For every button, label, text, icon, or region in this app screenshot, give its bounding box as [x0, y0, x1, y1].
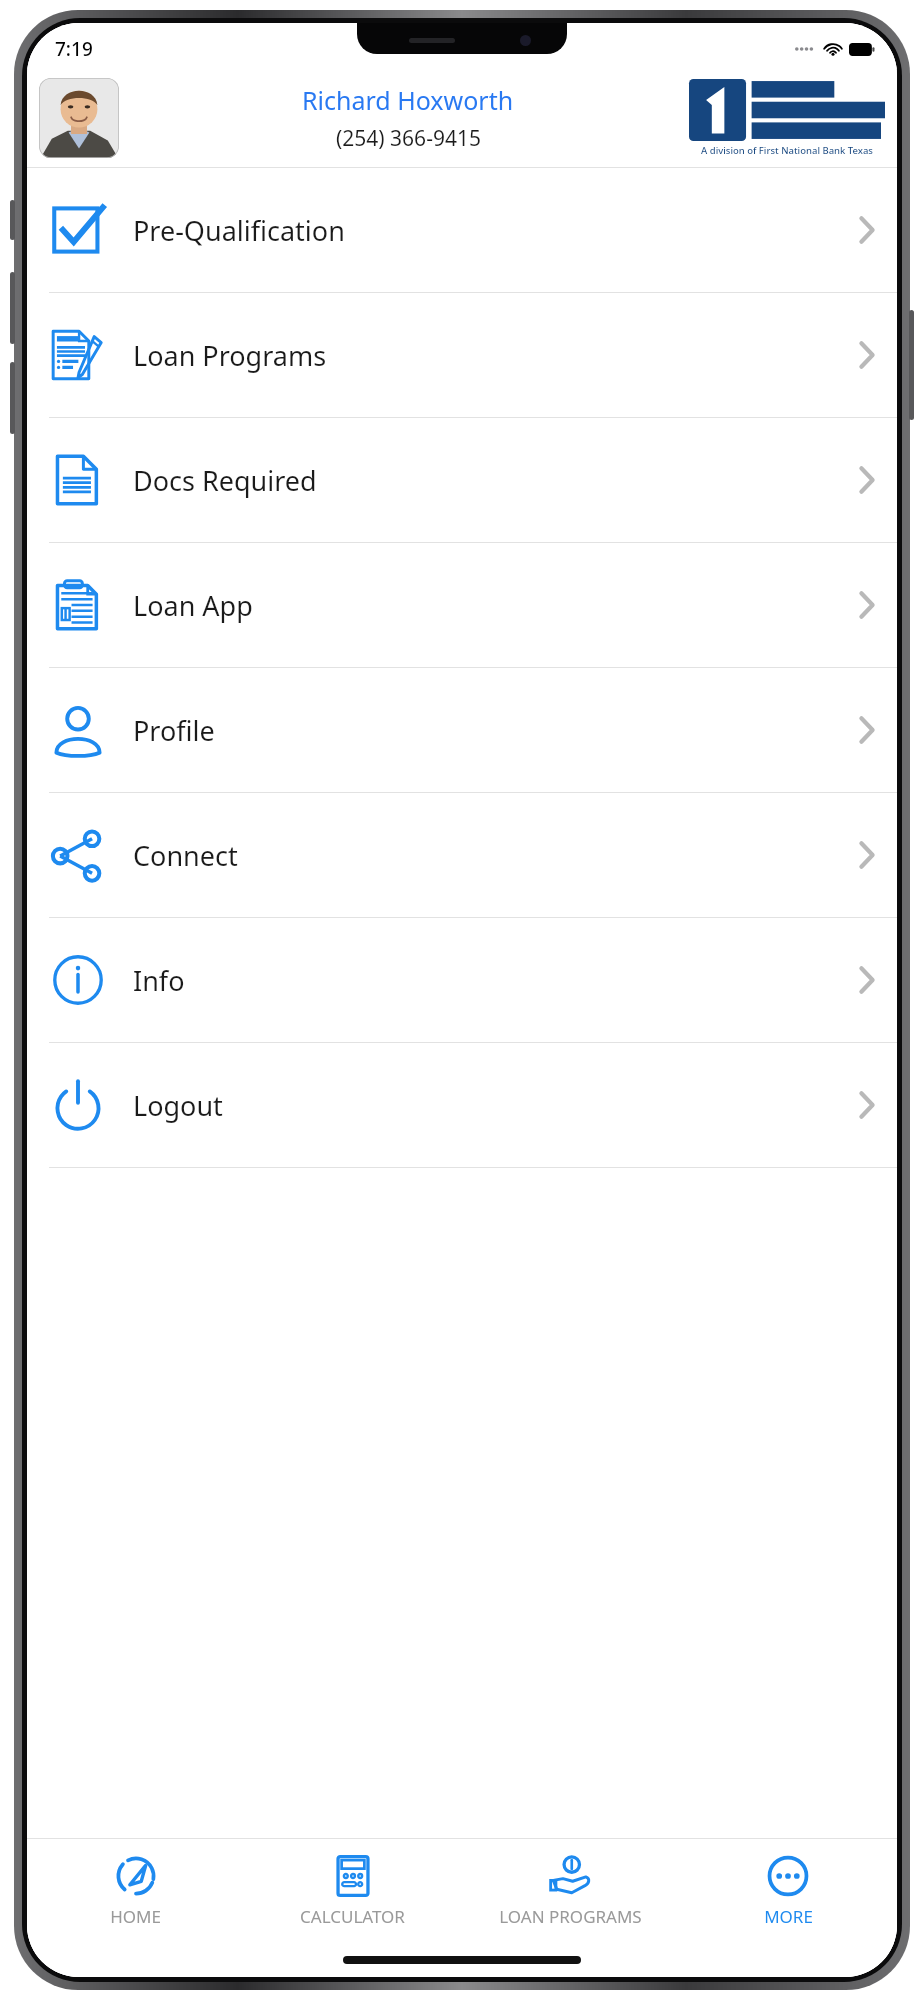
staticText: LOAN PROGRAMS	[499, 1905, 642, 1928]
staticText: Profile	[133, 712, 859, 749]
button[interactable]: Connect	[27, 793, 897, 917]
staticText: A division of First National Bank Texas	[701, 144, 873, 157]
staticText: HOME	[110, 1905, 161, 1928]
staticText: Connect	[133, 837, 859, 874]
staticText: Loan App	[133, 587, 859, 624]
button[interactable]: HOME	[27, 1839, 244, 1943]
button[interactable]: Logout	[27, 1043, 897, 1167]
button[interactable]: Pre-Qualification	[27, 168, 897, 292]
staticText: Richard Hoxworth	[302, 83, 514, 117]
button[interactable]: Profile	[27, 668, 897, 792]
button[interactable]: Docs Required	[27, 418, 897, 542]
staticText: Loan Programs	[133, 337, 859, 374]
staticText: Logout	[133, 1087, 859, 1124]
staticText: 7:19	[55, 36, 93, 62]
staticText: CALCULATOR	[300, 1905, 405, 1928]
button[interactable]: Loan Programs	[27, 293, 897, 417]
staticText: Docs Required	[133, 462, 859, 499]
staticText: MORE	[764, 1905, 813, 1928]
button[interactable]: LOAN PROGRAMS	[461, 1839, 679, 1943]
button[interactable]: Info	[27, 918, 897, 1042]
staticText: (254) 366-9415	[336, 124, 481, 153]
button[interactable]: Loan App	[27, 543, 897, 667]
button[interactable]: CALCULATOR	[244, 1839, 461, 1943]
button[interactable]: MORE	[679, 1839, 897, 1943]
staticText: Pre-Qualification	[133, 212, 859, 249]
staticText: Info	[133, 962, 859, 999]
